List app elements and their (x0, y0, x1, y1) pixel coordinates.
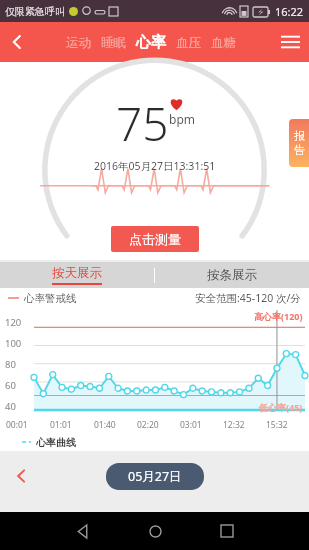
button[interactable]: Back (0, 22, 34, 62)
staticText: 点击测量 (129, 231, 181, 247)
staticText: 120 (5, 316, 22, 329)
staticText: 16:22 (275, 4, 304, 19)
staticText: 05月27日 (128, 468, 182, 485)
staticText: 告 (294, 143, 305, 157)
button[interactable]: 心率 (136, 33, 166, 52)
staticText: 2016年05月27日13:31:51 (94, 159, 216, 173)
staticText: 心率警戒线 (24, 292, 77, 305)
button[interactable]: 运动 (66, 35, 91, 51)
button[interactable]: Recents (191, 512, 263, 550)
staticText: 100 (5, 337, 22, 350)
button[interactable]: Menu (271, 22, 309, 62)
staticText: 按条展示 (207, 267, 257, 283)
button[interactable]: 按天展示 (0, 262, 154, 288)
button[interactable]: 报 (289, 119, 309, 167)
button[interactable]: 睡眠 (101, 35, 126, 51)
button[interactable]: 05月27日 (106, 463, 204, 490)
staticText: 血压 (176, 35, 201, 51)
button[interactable]: 按条展示 (155, 262, 309, 288)
staticText: 心率 (136, 33, 166, 52)
staticText: 01:01 (50, 419, 72, 431)
staticText: 按天展示 (52, 265, 102, 281)
staticText: 睡眠 (101, 35, 126, 51)
button[interactable]: 血糖 (211, 35, 236, 51)
button[interactable]: Back (47, 512, 119, 550)
staticText: 运动 (66, 35, 91, 51)
staticText: 02:20 (137, 419, 159, 431)
staticText: 01:40 (94, 419, 116, 431)
staticText: 60 (5, 379, 16, 392)
staticText: 40 (5, 400, 16, 413)
staticText: 00:01 (6, 419, 28, 431)
staticText: 心率曲线 (36, 436, 76, 449)
staticText: 低心率(45) (259, 401, 303, 413)
staticText: bpm (169, 111, 195, 127)
staticText: 15:32 (266, 419, 288, 431)
button[interactable]: Home (119, 512, 191, 550)
staticText: 安全范围:45-120 次/分 (195, 291, 301, 305)
staticText: 仅限紧急呼叫 (5, 5, 65, 18)
staticText: 报 (294, 129, 305, 143)
staticText: 12:32 (223, 419, 245, 431)
staticText: 75 (116, 92, 169, 155)
staticText: 血糖 (211, 35, 236, 51)
button[interactable]: 点击测量 (111, 226, 199, 252)
staticText: 03:01 (180, 419, 202, 431)
button[interactable]: 血压 (176, 35, 201, 51)
button[interactable]: Previous day (8, 463, 34, 489)
staticText: 80 (5, 358, 16, 371)
staticText: 高心率(120) (254, 310, 303, 322)
